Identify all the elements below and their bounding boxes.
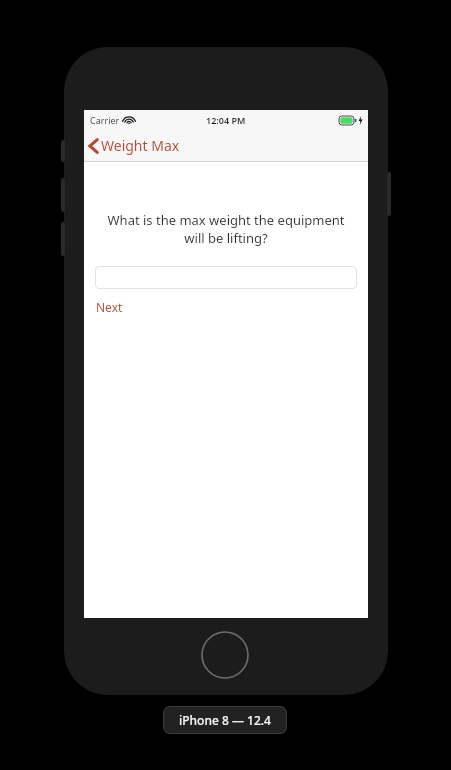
button[interactable]: Weight input field bbox=[95, 266, 357, 289]
staticText: Weight Max bbox=[101, 136, 180, 155]
staticText: Next bbox=[96, 299, 123, 315]
staticText: iPhone 8 — 12.4 bbox=[179, 712, 271, 728]
button[interactable]: iPhone 8 — 12.4 bbox=[163, 706, 287, 734]
button[interactable]: Home bbox=[201, 631, 249, 679]
staticText: What is the max weight the equipment wil… bbox=[98, 211, 354, 247]
staticText: Carrier bbox=[90, 114, 120, 126]
staticText: 12:04 PM bbox=[206, 114, 246, 126]
button[interactable]: Weight Max bbox=[89, 136, 180, 155]
button[interactable]: Next bbox=[95, 298, 124, 316]
